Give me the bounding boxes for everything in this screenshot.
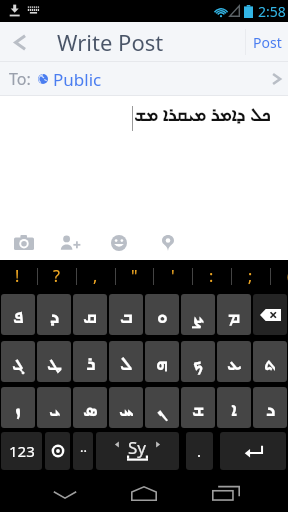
button[interactable]: ܢ bbox=[145, 387, 179, 428]
staticText: ܪ bbox=[86, 356, 95, 374]
staticText: 123 bbox=[9, 441, 35, 461]
button[interactable]: Symbols bbox=[73, 432, 93, 470]
staticText: ' bbox=[171, 265, 175, 287]
staticText: ܩ bbox=[83, 309, 97, 327]
staticText: ; bbox=[248, 265, 253, 287]
button[interactable]: ܩ bbox=[73, 294, 107, 335]
staticText: ܖ bbox=[266, 402, 275, 420]
staticText: ܓ bbox=[12, 356, 24, 374]
button[interactable]: . bbox=[186, 432, 213, 470]
button[interactable]: ܒ bbox=[109, 294, 143, 335]
button[interactable]: , bbox=[76, 260, 115, 293]
button[interactable]: ܫ bbox=[181, 387, 215, 428]
staticText: ? bbox=[53, 265, 60, 287]
button[interactable]: Settings bbox=[45, 432, 70, 470]
staticText: ! bbox=[15, 265, 20, 287]
button[interactable]: Recent apps bbox=[204, 472, 248, 512]
staticText: ܚ bbox=[119, 402, 134, 420]
button[interactable]: ܕ bbox=[37, 294, 71, 335]
button[interactable]: Photo bbox=[6, 225, 41, 260]
button[interactable]: Back bbox=[43, 474, 87, 512]
staticText: ܛ bbox=[47, 356, 62, 374]
button[interactable]: Feeling bbox=[101, 225, 136, 260]
button[interactable]: ! bbox=[0, 260, 37, 293]
staticText: ·· bbox=[80, 442, 87, 460]
staticText: ܗ bbox=[156, 356, 168, 374]
button[interactable]: ܬ bbox=[253, 341, 287, 382]
button[interactable]: ' bbox=[153, 260, 192, 293]
button[interactable]: ܦ bbox=[1, 294, 35, 335]
button[interactable]: ܡ bbox=[217, 294, 251, 335]
button[interactable]: Home bbox=[122, 472, 166, 512]
staticText: ܝ bbox=[49, 402, 60, 420]
button[interactable]: Tag people bbox=[52, 225, 87, 260]
button[interactable]: ; bbox=[231, 260, 270, 293]
button[interactable]: ܥ bbox=[217, 341, 251, 382]
staticText: Sy bbox=[128, 436, 147, 459]
staticText: ܟ bbox=[193, 356, 203, 374]
staticText: ܥ bbox=[227, 356, 241, 374]
button[interactable]: Location bbox=[150, 225, 185, 260]
staticText: ܒ bbox=[120, 309, 133, 327]
staticText: : bbox=[209, 265, 214, 287]
staticText: ( bbox=[287, 265, 288, 287]
button[interactable]: ܛ bbox=[37, 341, 71, 382]
button[interactable]: Enter bbox=[220, 432, 286, 470]
staticText: ܬ bbox=[264, 356, 276, 374]
button[interactable]: ܪ bbox=[73, 341, 107, 382]
staticText: ܣ bbox=[83, 402, 98, 420]
staticText: Post bbox=[253, 33, 282, 52]
button[interactable]: ( bbox=[270, 260, 288, 293]
button[interactable]: ܚ bbox=[109, 387, 143, 428]
staticText: . bbox=[197, 441, 202, 461]
button[interactable]: Backspace bbox=[253, 294, 287, 335]
button[interactable]: ܖ bbox=[253, 387, 287, 428]
staticText: 2:58 bbox=[258, 2, 286, 21]
button[interactable]: ܐ bbox=[217, 387, 251, 428]
staticText: ܢ bbox=[157, 402, 167, 420]
staticText: ܙ bbox=[15, 402, 21, 420]
staticText: ܨ bbox=[192, 309, 204, 327]
staticText: ܠ bbox=[120, 356, 132, 374]
staticText: Write Post bbox=[57, 27, 164, 57]
staticText: ܡ bbox=[228, 309, 240, 327]
button[interactable]: Back bbox=[0, 22, 40, 62]
button[interactable]: ܟ bbox=[181, 341, 215, 382]
button[interactable]: 123 bbox=[1, 432, 42, 470]
button[interactable]: " bbox=[115, 260, 154, 293]
staticText: ܐ bbox=[231, 402, 237, 420]
staticText: ܘ bbox=[157, 309, 168, 327]
staticText: , bbox=[93, 265, 98, 287]
staticText: Public bbox=[53, 68, 102, 91]
button[interactable]: Space bbox=[96, 432, 179, 470]
button[interactable]: Post bbox=[246, 22, 288, 62]
button[interactable]: ܓ bbox=[1, 341, 35, 382]
staticText: ܫ bbox=[192, 402, 204, 420]
button[interactable]: ܗ bbox=[145, 341, 179, 382]
staticText: ܕ bbox=[50, 309, 59, 327]
staticText: To: bbox=[9, 68, 31, 90]
button[interactable]: ܙ bbox=[1, 387, 35, 428]
button[interactable]: ܘ bbox=[145, 294, 179, 335]
button[interactable]: ܣ bbox=[73, 387, 107, 428]
button[interactable]: ܝ bbox=[37, 387, 71, 428]
button[interactable]: To: bbox=[0, 62, 288, 96]
staticText: " bbox=[131, 265, 138, 287]
button[interactable]: ? bbox=[37, 260, 76, 293]
button[interactable]: : bbox=[192, 260, 231, 293]
button[interactable]: ܠ bbox=[109, 341, 143, 382]
staticText: ܟܠ ܕܐܡܪ ܡܝܩܪܐ ܡܫ bbox=[134, 102, 271, 127]
staticText: ܦ bbox=[13, 309, 23, 327]
button[interactable]: ܨ bbox=[181, 294, 215, 335]
